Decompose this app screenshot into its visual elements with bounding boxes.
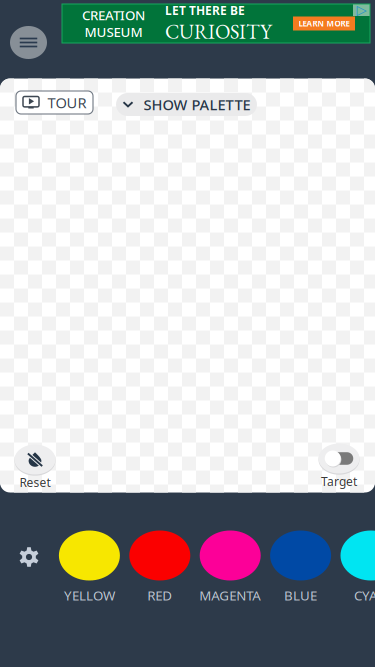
button[interactable]: BLUE bbox=[270, 530, 331, 604]
staticText: YELLOW bbox=[64, 586, 115, 604]
staticText: RED bbox=[147, 586, 172, 604]
button[interactable]: YELLOW bbox=[59, 530, 120, 604]
staticText: CURIOSITY bbox=[165, 18, 272, 45]
button[interactable]: Target bbox=[318, 443, 359, 489]
staticText: SHOW PALETTE bbox=[143, 95, 250, 114]
staticText: Target bbox=[321, 473, 357, 489]
button[interactable]: Reset bbox=[14, 444, 55, 490]
button[interactable]: MAGENTA bbox=[200, 530, 261, 604]
staticText: MUSEUM bbox=[84, 23, 142, 41]
button[interactable]: SHOW PALETTE bbox=[116, 93, 257, 116]
button[interactable]: CYAN bbox=[340, 530, 375, 604]
button[interactable]: Settings bbox=[19, 547, 38, 566]
staticText: MAGENTA bbox=[199, 586, 261, 604]
staticText: CYAN bbox=[354, 586, 375, 604]
button[interactable]: TOUR bbox=[16, 91, 93, 114]
staticText: Reset bbox=[19, 474, 50, 490]
staticText: ▷ bbox=[356, 2, 366, 17]
staticText: LEARN MORE bbox=[298, 18, 349, 29]
button[interactable]: Menu bbox=[10, 26, 47, 59]
staticText: TOUR bbox=[47, 93, 86, 112]
button[interactable]: CREATION bbox=[62, 4, 370, 43]
button[interactable]: RED bbox=[129, 530, 190, 604]
staticText: BLUE bbox=[284, 586, 317, 604]
staticText: CREATION bbox=[82, 6, 145, 24]
staticText: LET THERE BE bbox=[165, 2, 245, 18]
